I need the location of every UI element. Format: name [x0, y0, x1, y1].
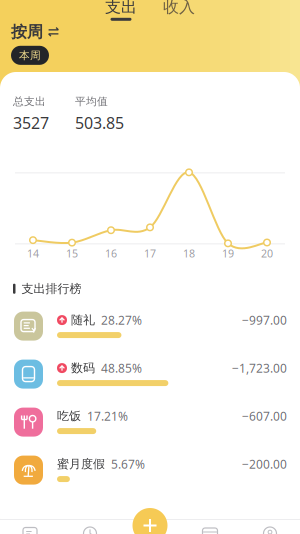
- staticText: 吃饭: [57, 409, 81, 423]
- button[interactable]: 蜜月度假: [0, 446, 300, 494]
- staticText: 15: [66, 246, 78, 261]
- button[interactable]: 明细: [0, 526, 60, 534]
- staticText: 20: [261, 246, 273, 261]
- button[interactable]: 数码: [0, 350, 300, 398]
- staticText: 支出排行榜: [21, 281, 81, 296]
- staticText: 17.21%: [87, 408, 128, 424]
- staticText: 蜜月度假: [57, 457, 105, 471]
- staticText: −200.00: [242, 456, 287, 472]
- staticText: 5.67%: [111, 456, 145, 472]
- button[interactable]: 记一笔: [132, 508, 167, 534]
- button[interactable]: 按周: [11, 22, 59, 42]
- staticText: 503.85: [75, 112, 124, 133]
- button[interactable]: 本周: [11, 46, 49, 65]
- staticText: 本周: [19, 49, 41, 62]
- staticText: −1,723.00: [232, 360, 287, 376]
- staticText: −997.00: [242, 312, 287, 328]
- staticText: 19: [222, 246, 234, 261]
- staticText: 48.85%: [101, 360, 142, 376]
- button[interactable]: 资产: [180, 526, 240, 534]
- button[interactable]: 吃饭: [0, 398, 300, 446]
- staticText: 按周: [11, 22, 43, 42]
- staticText: 17: [144, 246, 156, 261]
- staticText: 收入: [163, 0, 195, 17]
- staticText: 3527: [13, 112, 49, 133]
- button[interactable]: 随礼: [0, 302, 300, 350]
- staticText: 18: [183, 246, 195, 261]
- staticText: 支出: [105, 0, 137, 17]
- staticText: 随礼: [71, 313, 95, 327]
- staticText: 平均值: [75, 95, 108, 108]
- staticText: 数码: [71, 361, 95, 375]
- staticText: 28.27%: [101, 312, 142, 328]
- staticText: 14: [27, 246, 39, 261]
- button[interactable]: 图表: [60, 526, 120, 534]
- staticText: 总支出: [13, 95, 46, 108]
- staticText: −607.00: [242, 408, 287, 424]
- button[interactable]: 我的: [240, 526, 300, 534]
- staticText: 16: [105, 246, 117, 261]
